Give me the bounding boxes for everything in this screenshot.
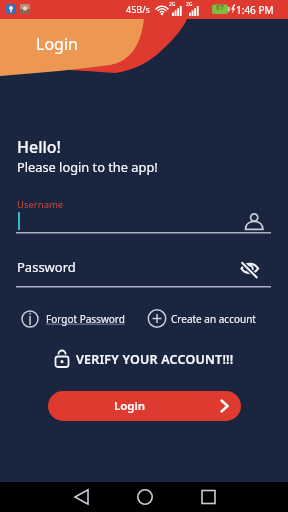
staticText: Login: [36, 33, 78, 55]
staticText: Hello!: [17, 136, 61, 158]
staticText: VERIFY YOUR ACCOUNT!!!: [76, 351, 234, 368]
staticText: 67: [216, 3, 225, 13]
button[interactable]: Username: [16, 198, 272, 234]
staticText: 2G: [186, 1, 193, 8]
staticText: 2G: [169, 1, 176, 8]
staticText: 1:46 PM: [236, 3, 274, 17]
staticText: Username: [17, 198, 64, 211]
button[interactable]: VERIFY YOUR ACCOUNT!!!: [50, 348, 245, 372]
staticText: Forgot Password: [46, 312, 125, 326]
button[interactable]: [194, 487, 222, 507]
button[interactable]: [131, 487, 159, 507]
staticText: Create an account: [171, 312, 256, 326]
button[interactable]: [68, 487, 96, 507]
button[interactable]: Forgot Password: [18, 308, 130, 330]
button[interactable]: Create an account: [146, 308, 258, 330]
staticText: 45B/s: [126, 3, 150, 15]
button[interactable]: Password: [16, 253, 272, 289]
button[interactable]: Login: [48, 391, 241, 421]
staticText: Login: [114, 398, 146, 414]
staticText: Password: [17, 258, 76, 276]
staticText: Please login to the app!: [17, 158, 158, 175]
